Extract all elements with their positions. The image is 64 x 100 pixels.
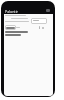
button[interactable] [5, 25, 16, 30]
staticText: Palantir [5, 9, 19, 14]
button[interactable] [46, 9, 50, 12]
button[interactable] [31, 18, 47, 24]
